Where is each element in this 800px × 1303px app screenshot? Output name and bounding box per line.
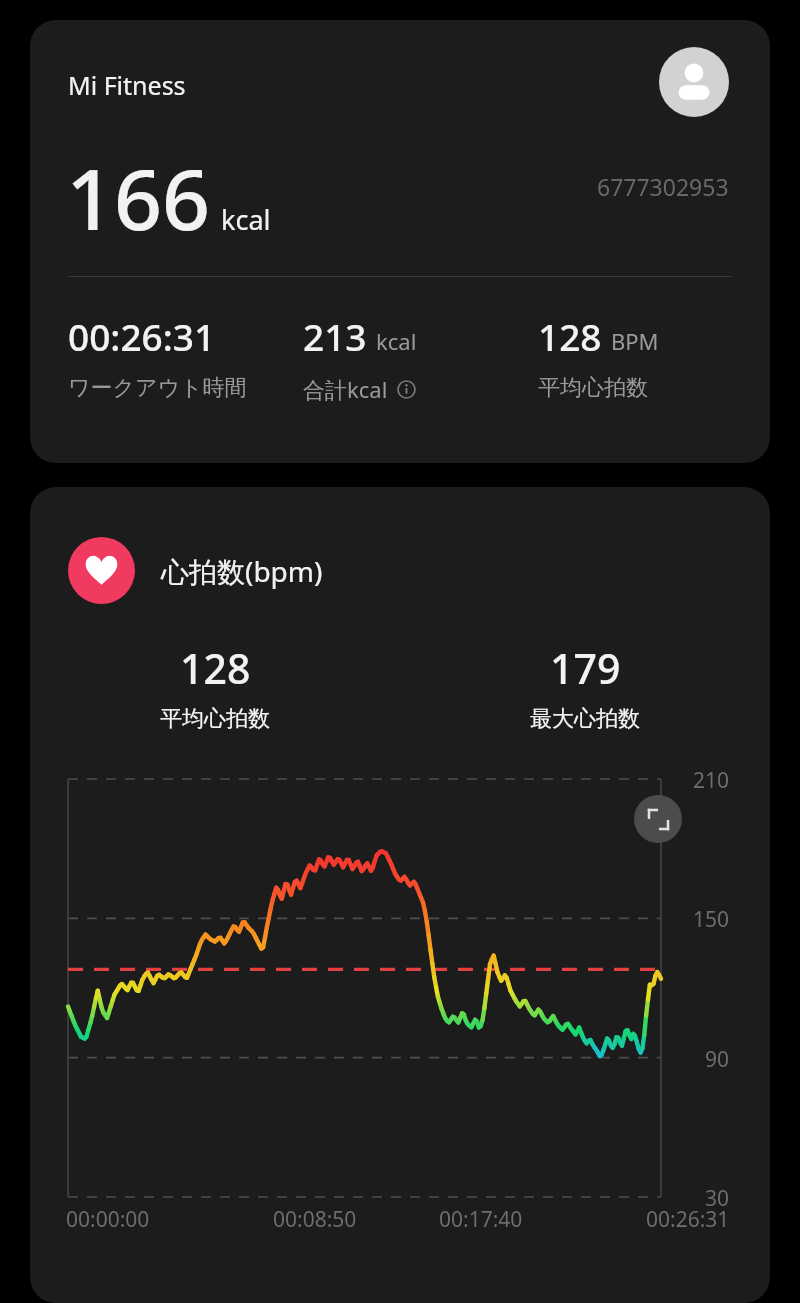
staticText: 平均心拍数	[538, 374, 648, 402]
staticText: BPM	[611, 326, 659, 356]
staticText: 00:26:31	[68, 311, 216, 361]
staticText: 128	[180, 640, 251, 696]
staticText: 00:08:50	[273, 1205, 357, 1234]
staticText: kcal	[221, 201, 271, 238]
staticText: 合計kcal	[303, 374, 388, 404]
staticText: 00:00:00	[66, 1205, 150, 1234]
button[interactable]: 179	[400, 640, 770, 733]
staticText: kcal	[376, 326, 417, 356]
button[interactable]: Mi Fitness	[30, 20, 770, 463]
button[interactable]: Profile	[659, 47, 729, 117]
button[interactable]: Expand chart	[634, 795, 682, 843]
staticText: 90	[705, 1045, 730, 1074]
staticText: 00:17:40	[439, 1205, 523, 1234]
button[interactable]: 心拍数(bpm)	[30, 487, 770, 1303]
staticText: 128	[538, 311, 602, 361]
button[interactable]: 00:26:31	[68, 311, 303, 402]
staticText: ワークアウト時間	[68, 374, 247, 402]
staticText: 150	[693, 905, 730, 934]
button[interactable]: 128	[538, 311, 738, 402]
button[interactable]: 213	[303, 311, 538, 404]
button[interactable]: 128	[30, 640, 400, 733]
staticText: 最大心拍数	[530, 705, 640, 733]
staticText: 210	[693, 766, 730, 795]
staticText: 179	[550, 640, 621, 696]
staticText: 6777302953	[597, 171, 729, 202]
staticText: Mi Fitness	[68, 68, 186, 102]
staticText: 166	[66, 140, 211, 254]
staticText: 心拍数(bpm)	[161, 552, 323, 590]
staticText: 平均心拍数	[160, 705, 270, 733]
staticText: 213	[303, 311, 367, 361]
staticText: 30	[705, 1184, 730, 1213]
staticText: 00:26:31	[646, 1205, 730, 1234]
